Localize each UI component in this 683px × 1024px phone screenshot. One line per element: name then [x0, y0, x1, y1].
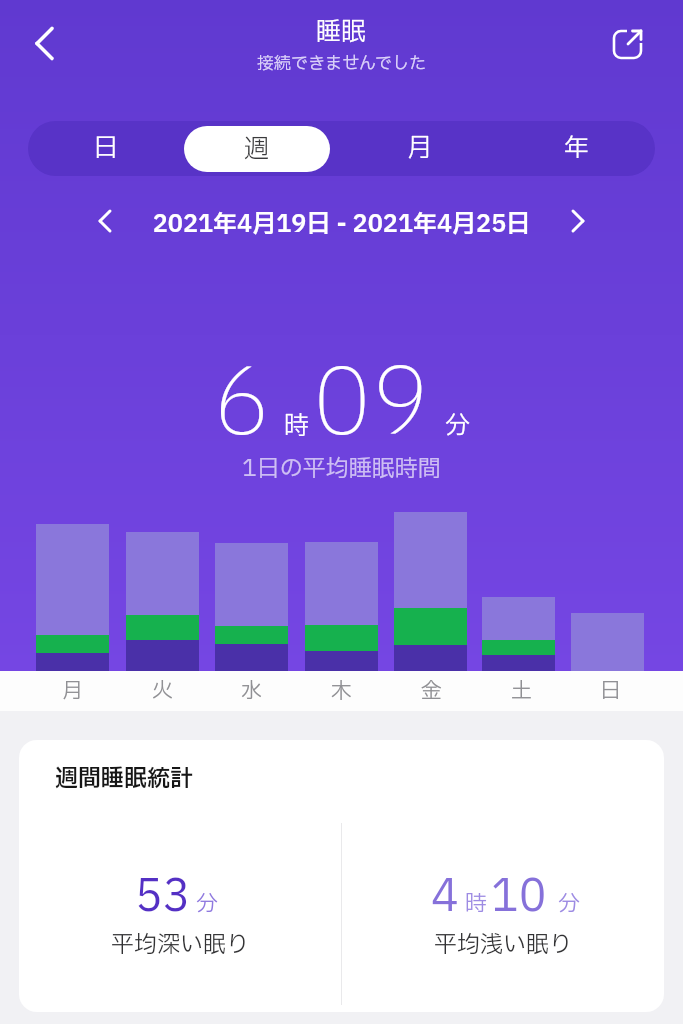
staticText: 6	[213, 336, 271, 474]
button[interactable]: 週間睡眠統計	[19, 740, 664, 1012]
staticText: 平均浅い眠り	[342, 928, 664, 962]
staticText: 金	[421, 676, 442, 707]
staticText: 53	[135, 864, 191, 930]
staticText: 木	[331, 676, 352, 707]
staticText: 分	[445, 408, 471, 445]
staticText: 火	[152, 676, 173, 707]
staticText: 月	[62, 676, 83, 707]
staticText: 2021年4月19日 - 2021年4月25日	[0, 207, 683, 243]
staticText: 09	[313, 336, 429, 474]
staticText: 10	[491, 864, 547, 930]
staticText: 睡眠	[316, 14, 367, 51]
button[interactable]	[88, 203, 124, 239]
button[interactable]: 週	[184, 126, 330, 172]
button[interactable]	[559, 203, 595, 239]
button[interactable]	[608, 24, 648, 64]
staticText: 土	[511, 676, 532, 707]
staticText: 4	[431, 864, 459, 930]
staticText: 1日の平均睡眠時間	[0, 452, 683, 486]
staticText: 日	[600, 676, 621, 707]
staticText: 分	[196, 888, 219, 921]
staticText: 時	[465, 888, 488, 921]
staticText: 週間睡眠統計	[55, 762, 193, 796]
staticText: 接続できませんでした	[257, 51, 426, 76]
button[interactable]: 月	[341, 121, 498, 176]
staticText: 水	[241, 676, 262, 707]
staticText: 時	[284, 408, 310, 445]
staticText: 週	[244, 131, 270, 168]
staticText: 平均深い眠り	[19, 928, 341, 962]
button[interactable]: 日	[28, 121, 184, 176]
staticText: 分	[558, 888, 581, 921]
staticText: 年	[564, 130, 590, 167]
button[interactable]: 年	[498, 121, 655, 176]
staticText: 月	[407, 130, 433, 167]
button[interactable]	[184, 121, 341, 176]
button[interactable]	[24, 24, 64, 64]
staticText: 日	[93, 130, 119, 167]
